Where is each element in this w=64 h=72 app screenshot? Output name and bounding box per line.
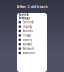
button[interactable]: General [17, 20, 47, 24]
button[interactable]: Sounds [17, 29, 47, 33]
staticText: Network [23, 47, 34, 50]
staticText: Accounts [23, 51, 35, 55]
staticText: Tools & Settings [19, 13, 30, 20]
staticText: Privacy [23, 34, 31, 37]
staticText: Battery [23, 38, 32, 41]
button[interactable]: Display [17, 24, 47, 29]
staticText: Display [23, 25, 32, 28]
button[interactable]: Network [17, 46, 47, 51]
staticText: General [23, 20, 34, 24]
staticText: Storage [23, 42, 33, 46]
staticText: Alfon Coldblank [16, 4, 47, 9]
button[interactable]: Privacy [17, 33, 47, 38]
button[interactable]: Accounts [17, 51, 47, 55]
staticText: Sounds [23, 29, 33, 33]
button[interactable]: Storage [17, 42, 47, 46]
button[interactable]: Battery [17, 38, 47, 42]
